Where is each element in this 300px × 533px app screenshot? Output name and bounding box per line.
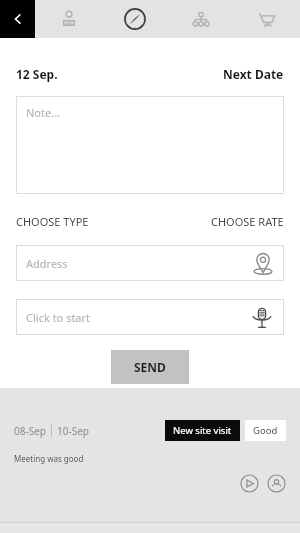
button[interactable]: New site visit [165,420,240,441]
button[interactable]: Note... [16,96,284,194]
staticText: Meeting was good [14,453,84,464]
button[interactable]: Pick location [248,248,278,278]
button[interactable]: Good [245,420,286,441]
staticText: Click to start [26,310,91,325]
button[interactable]: Record voice [248,303,276,331]
button[interactable]: Explore [102,0,168,38]
staticText: 08-Sep [14,424,46,438]
button[interactable]: CHOOSE TYPE [16,214,89,229]
button[interactable]: Hierarchy [168,0,234,38]
button[interactable]: CHOOSE RATE [211,214,284,229]
button[interactable]: Play [240,474,259,493]
button[interactable]: Next Date [223,66,284,82]
button[interactable]: Contacts [35,0,102,38]
staticText: Note... [26,105,61,120]
staticText: Address [26,256,68,271]
button[interactable]: Cart [234,0,300,38]
button[interactable]: Location profile [267,474,286,493]
staticText: New site visit [173,424,232,437]
staticText: Good [253,424,278,437]
staticText: SEND [134,359,166,375]
button[interactable]: Address [16,245,284,281]
staticText: 10-Sep [57,424,89,438]
button[interactable]: Back [0,0,35,38]
button[interactable]: 12 Sep. [16,66,58,82]
button[interactable]: SEND [111,350,189,384]
button[interactable]: Click to start [16,299,284,335]
